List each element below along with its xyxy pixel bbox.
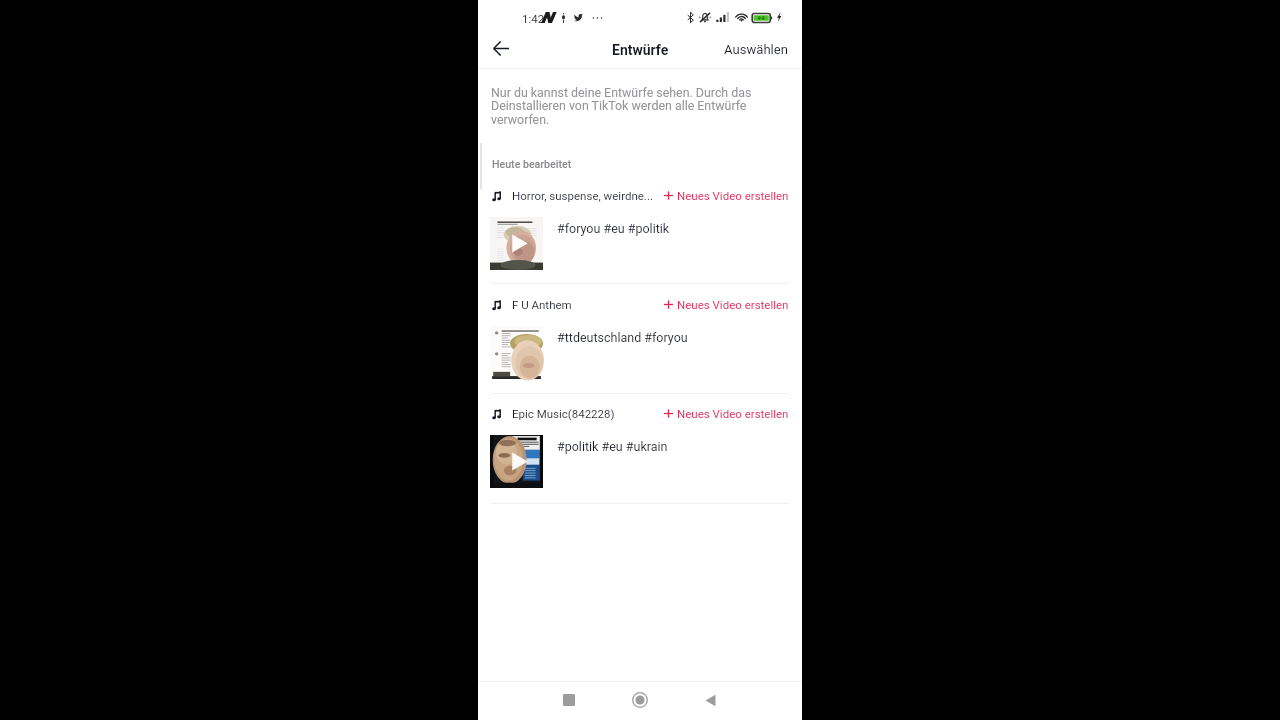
button[interactable]: Zurück (694, 684, 726, 716)
button[interactable] (490, 217, 543, 270)
staticText: Nur du kannst deine Entwürfe sehen. Durc… (491, 85, 752, 127)
button[interactable]: Neues Video erstellen (662, 295, 793, 314)
staticText: #foryou #eu #politik (557, 221, 670, 236)
staticText: Neues Video erstellen (677, 189, 789, 202)
staticText: Heute bearbeitet (492, 158, 572, 170)
button[interactable] (490, 326, 543, 379)
staticText: #ttdeutschland #foryou (557, 330, 688, 345)
staticText: Neues Video erstellen (677, 298, 789, 311)
staticText: Horror, suspense, weirdne... (512, 189, 653, 202)
staticText: Neues Video erstellen (677, 407, 789, 420)
staticText: Auswählen (724, 42, 788, 57)
button[interactable]: Neues Video erstellen (662, 404, 793, 423)
staticText: F U Anthem (512, 298, 572, 311)
button[interactable]: Letzte Apps (553, 684, 585, 716)
button[interactable]: Startbildschirm (624, 684, 656, 716)
staticText: Epic Music(842228) (512, 407, 615, 420)
staticText: 1:42 (522, 12, 545, 25)
staticText: Entwürfe (612, 42, 669, 58)
button[interactable] (490, 435, 543, 488)
button[interactable]: Neues Video erstellen (662, 186, 793, 205)
button[interactable]: Auswählen (710, 34, 802, 65)
button[interactable]: Zurück (484, 31, 518, 65)
staticText: #politik #eu #ukrain (557, 439, 668, 454)
